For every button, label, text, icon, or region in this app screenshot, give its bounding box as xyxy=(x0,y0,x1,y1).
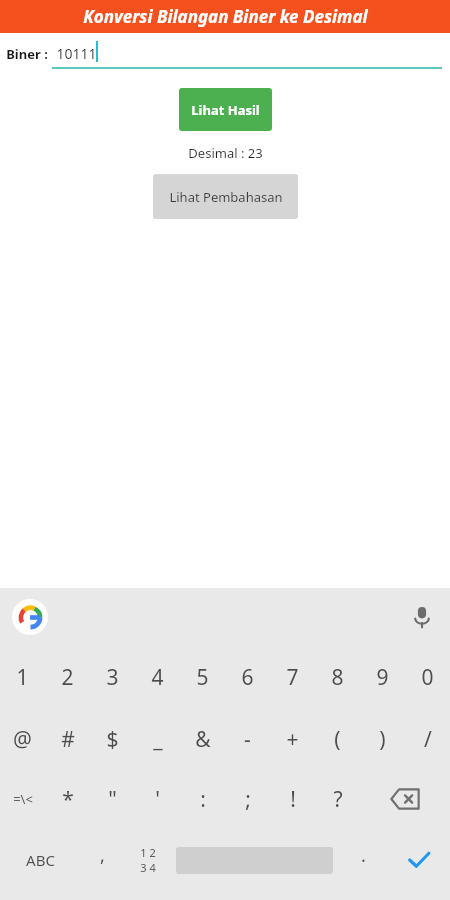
button[interactable]: 1 xyxy=(0,646,45,709)
button[interactable]: 10111 xyxy=(52,36,442,69)
button[interactable]: 3 xyxy=(90,646,135,709)
button[interactable]: 9 xyxy=(360,646,405,709)
staticText: - xyxy=(244,725,251,754)
button[interactable]: , xyxy=(81,829,124,891)
staticText: 3 xyxy=(106,663,119,692)
staticText: : xyxy=(200,785,206,814)
staticText: # xyxy=(61,725,75,754)
staticText: 2 xyxy=(61,663,74,692)
staticText: 7 xyxy=(286,663,299,692)
button[interactable]: 7 xyxy=(270,646,315,709)
button[interactable]: 0 xyxy=(405,646,450,709)
button[interactable]: # xyxy=(45,709,90,769)
button[interactable]: 2 xyxy=(45,646,90,709)
button[interactable]: Lihat Hasil xyxy=(179,88,272,131)
button[interactable]: Space xyxy=(171,829,338,891)
staticText: " xyxy=(108,785,117,814)
button[interactable]: " xyxy=(90,769,135,829)
button[interactable]: - xyxy=(225,709,270,769)
button[interactable]: * xyxy=(45,769,90,829)
button[interactable]: Voice input xyxy=(402,597,442,637)
button[interactable]: + xyxy=(270,709,315,769)
button[interactable]: Lihat Pembahasan xyxy=(153,174,298,219)
button[interactable]: & xyxy=(180,709,225,769)
staticText: =\< xyxy=(13,790,33,808)
button[interactable]: Google search xyxy=(12,599,48,635)
staticText: ABC xyxy=(26,850,55,870)
staticText: 9 xyxy=(376,663,389,692)
button[interactable]: . xyxy=(338,829,388,891)
staticText: / xyxy=(424,725,432,754)
button[interactable]: ABC xyxy=(0,829,81,891)
button[interactable]: ' xyxy=(135,769,180,829)
button[interactable]: 6 xyxy=(225,646,270,709)
staticText: $ xyxy=(106,725,119,754)
staticText: Lihat Hasil xyxy=(191,101,260,119)
staticText: 1 2 xyxy=(140,845,156,860)
staticText: 0 xyxy=(421,663,434,692)
staticText: 3 4 xyxy=(140,860,156,875)
staticText: @ xyxy=(13,725,32,754)
staticText: ' xyxy=(155,785,160,814)
staticText: ( xyxy=(334,725,341,754)
button[interactable]: Backspace xyxy=(360,769,450,829)
button[interactable]: $ xyxy=(90,709,135,769)
button[interactable]: _ xyxy=(135,709,180,769)
staticText: + xyxy=(286,725,299,754)
button[interactable]: Enter xyxy=(388,829,450,891)
staticText: Lihat Pembahasan xyxy=(169,188,283,206)
staticText: & xyxy=(195,725,211,754)
button[interactable]: @ xyxy=(0,709,45,769)
staticText: Desimal : 23 xyxy=(188,144,263,162)
button[interactable]: 8 xyxy=(315,646,360,709)
staticText: 4 xyxy=(151,663,164,692)
staticText: ) xyxy=(379,725,386,754)
staticText: . xyxy=(361,843,366,868)
staticText: _ xyxy=(153,725,163,754)
staticText: , xyxy=(100,843,105,868)
button[interactable]: 5 xyxy=(180,646,225,709)
button[interactable]: / xyxy=(405,709,450,769)
staticText: ! xyxy=(290,785,296,814)
staticText: Biner : xyxy=(6,45,48,63)
staticText: 6 xyxy=(241,663,254,692)
staticText: ? xyxy=(333,785,343,814)
staticText: Konversi Bilangan Biner ke Desimal xyxy=(83,5,368,28)
staticText: ; xyxy=(245,785,251,814)
button[interactable]: Konversi Bilangan Biner ke Desimal xyxy=(0,0,450,33)
button[interactable]: ! xyxy=(270,769,315,829)
button[interactable]: : xyxy=(180,769,225,829)
button[interactable]: ( xyxy=(315,709,360,769)
staticText: 1 xyxy=(16,663,29,692)
button[interactable]: =\< xyxy=(0,769,45,829)
button[interactable]: Numbers xyxy=(124,829,171,891)
button[interactable]: ; xyxy=(225,769,270,829)
button[interactable]: ? xyxy=(315,769,360,829)
button[interactable]: ) xyxy=(360,709,405,769)
staticText: 8 xyxy=(331,663,344,692)
button[interactable]: 4 xyxy=(135,646,180,709)
staticText: 5 xyxy=(196,663,209,692)
staticText: * xyxy=(62,785,74,814)
staticText: 10111 xyxy=(56,44,97,63)
